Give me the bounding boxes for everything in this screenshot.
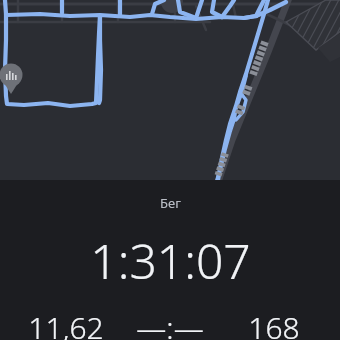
staticText: —:— bbox=[136, 307, 204, 340]
button[interactable]: —:— bbox=[118, 307, 222, 340]
button[interactable]: 168 bbox=[222, 307, 326, 340]
button[interactable]: Map of route bbox=[0, 0, 340, 180]
staticText: 11,62 bbox=[28, 307, 104, 340]
button[interactable]: 11,62 bbox=[14, 307, 118, 340]
staticText: Бег bbox=[160, 194, 181, 212]
staticText: 168 bbox=[248, 307, 300, 340]
staticText: 1:31:07 bbox=[90, 228, 251, 293]
